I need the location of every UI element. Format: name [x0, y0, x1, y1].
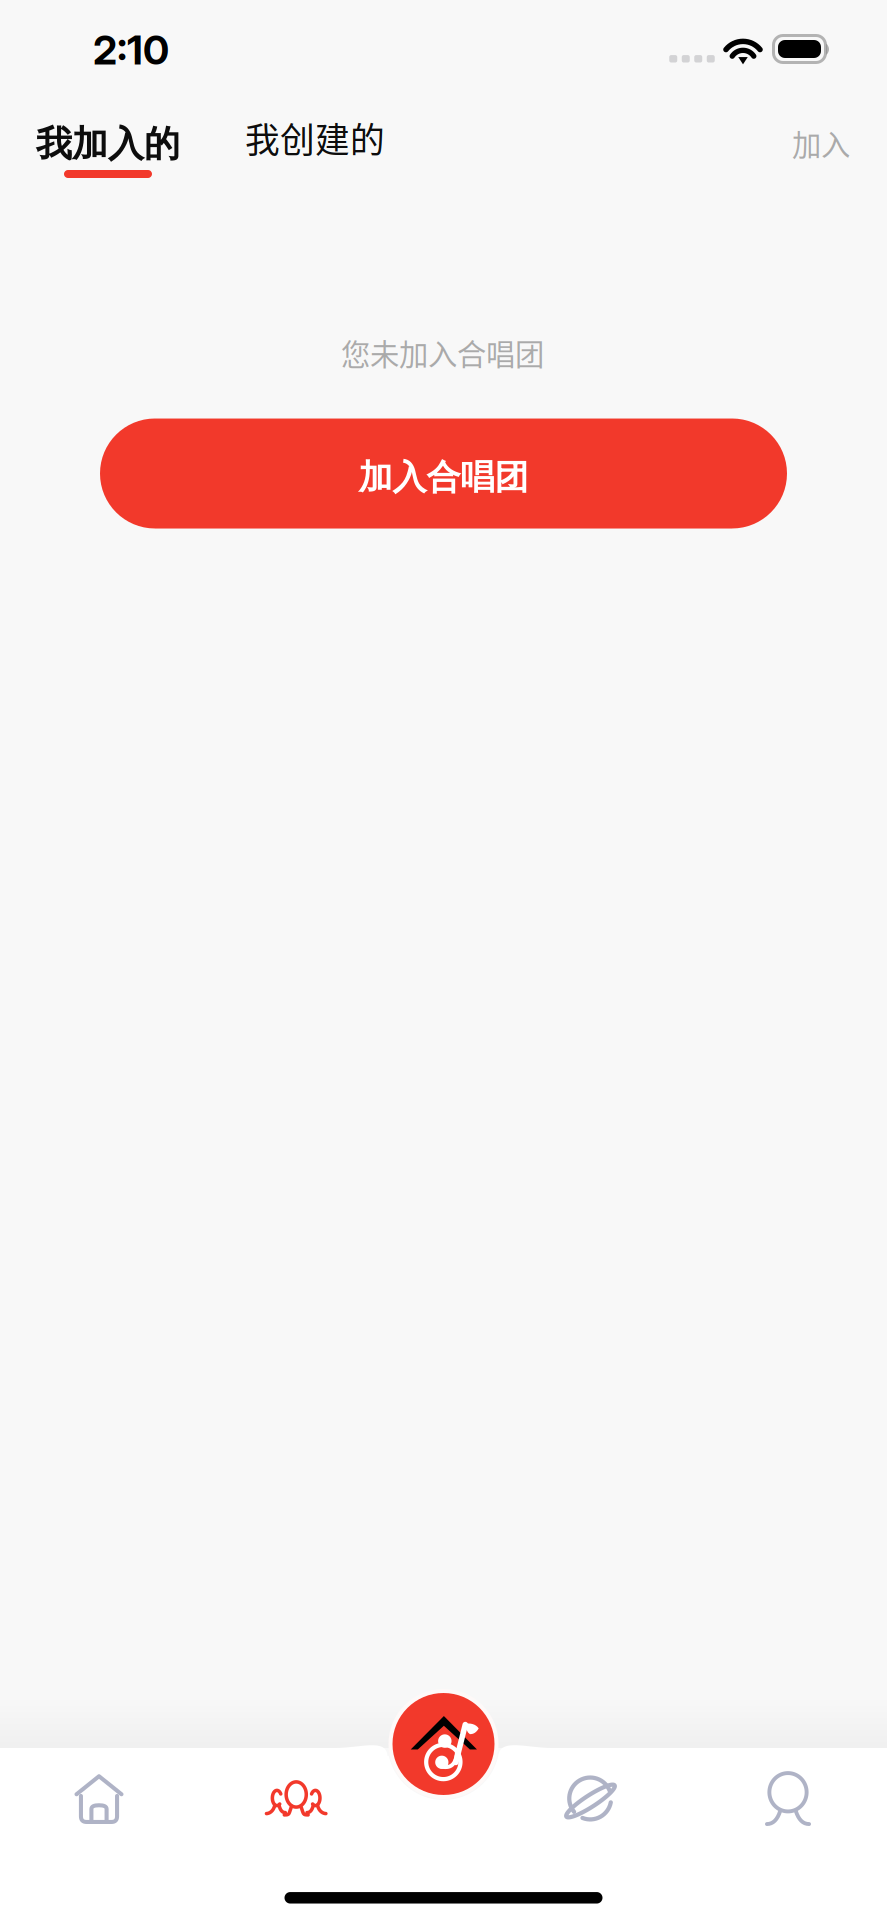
staticText: 加入	[792, 122, 850, 164]
button[interactable]: 加入	[761, 108, 881, 178]
button[interactable]: 发现	[502, 1747, 678, 1855]
staticText: 加入合唱团	[358, 456, 528, 499]
button[interactable]: 首页	[11, 1745, 187, 1853]
staticText: 2:10	[93, 26, 169, 74]
button[interactable]: 加入合唱团	[100, 418, 787, 528]
staticText: 您未加入合唱团	[341, 331, 544, 374]
staticText: 我加入的	[36, 121, 180, 167]
button[interactable]: 合唱团	[207, 1744, 383, 1852]
button[interactable]: 创建	[378, 1679, 508, 1809]
button[interactable]: 我加入的	[13, 114, 203, 182]
button[interactable]: 我创建的	[225, 102, 405, 174]
staticText: 我创建的	[245, 113, 385, 163]
button[interactable]: 我的	[700, 1745, 876, 1853]
